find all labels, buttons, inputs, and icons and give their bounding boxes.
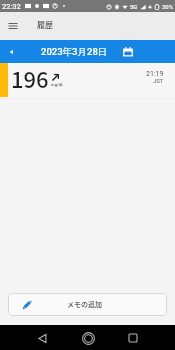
- staticText: 21:19: [146, 70, 164, 78]
- button[interactable]: Previous day: [2, 43, 20, 61]
- button[interactable]: メモの追加: [8, 293, 167, 316]
- button[interactable]: 196: [0, 63, 175, 98]
- button[interactable]: Recents: [125, 330, 141, 346]
- staticText: メモの追加: [67, 299, 102, 309]
- staticText: 196: [11, 62, 49, 94]
- button[interactable]: Menu: [2, 15, 24, 37]
- staticText: mg/dL: [51, 82, 64, 87]
- staticText: 5G: [130, 3, 138, 10]
- staticText: JST: [153, 77, 164, 84]
- button[interactable]: Back: [34, 330, 50, 346]
- staticText: 22:32: [2, 2, 21, 11]
- button[interactable]: Home: [80, 330, 96, 346]
- staticText: 2023年3月28日: [41, 46, 108, 58]
- staticText: 30%: [162, 3, 174, 10]
- staticText: 履歴: [37, 19, 53, 31]
- button[interactable]: Pick date: [120, 44, 136, 60]
